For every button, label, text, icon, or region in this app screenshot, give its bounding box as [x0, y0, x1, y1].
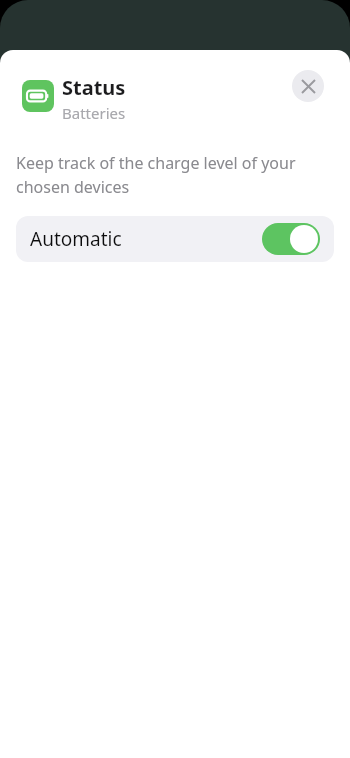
staticText: Status: [62, 74, 126, 101]
staticText: Keep track of the charge level of your c…: [16, 152, 334, 198]
staticText: Batteries: [62, 103, 126, 123]
button[interactable]: Close: [292, 70, 324, 102]
button[interactable]: Automatic: [16, 216, 334, 262]
staticText: Automatic: [30, 226, 122, 252]
button[interactable]: Automatic toggle, on: [262, 223, 320, 255]
